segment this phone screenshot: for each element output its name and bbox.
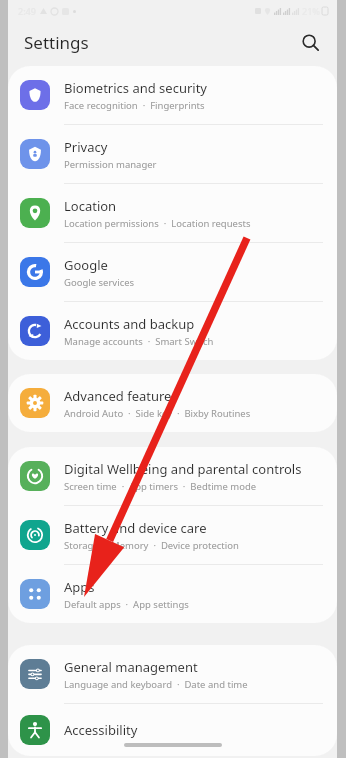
staticText: Storage · Memory · Device protection	[64, 539, 239, 552]
button[interactable]: Accessibility	[8, 704, 337, 756]
staticText: Advanced features	[64, 387, 178, 405]
button[interactable]: Privacy	[8, 125, 337, 183]
button[interactable]: Digital Wellbeing and parental controls	[8, 447, 337, 505]
staticText: Apps	[64, 578, 95, 596]
staticText: Default apps · App settings	[64, 598, 189, 611]
staticText: Face recognition · Fingerprints	[64, 99, 205, 112]
staticText: Language and keyboard · Date and time	[64, 678, 248, 691]
staticText: Google services	[64, 276, 135, 289]
staticText: Location	[64, 197, 117, 215]
staticText: Accessibility	[64, 721, 138, 739]
button[interactable]: Accounts and backup	[8, 302, 337, 360]
staticText: Privacy	[64, 138, 108, 156]
staticText: Google	[64, 256, 108, 274]
staticText: Battery and device care	[64, 519, 207, 537]
button[interactable]: Advanced features	[8, 374, 337, 432]
button[interactable]: General management	[8, 645, 337, 703]
staticText: General management	[64, 658, 198, 676]
button[interactable]: Battery and device care	[8, 506, 337, 564]
staticText: Android Auto · Side key · Bixby Routines	[64, 407, 251, 420]
button[interactable]: Biometrics and security	[8, 66, 337, 124]
staticText: Digital Wellbeing and parental controls	[64, 460, 302, 478]
staticText: Manage accounts · Smart Switch	[64, 335, 214, 348]
staticText: Accounts and backup	[64, 315, 195, 333]
staticText: Screen time · App timers · Bedtime mode	[64, 480, 257, 493]
staticText: Biometrics and security	[64, 79, 208, 97]
button[interactable]: Google	[8, 243, 337, 301]
staticText: Settings	[24, 31, 89, 54]
button[interactable]: Search	[293, 25, 327, 59]
button[interactable]: Apps	[8, 565, 337, 623]
staticText: Location permissions · Location requests	[64, 217, 251, 230]
staticText: 2:49	[18, 5, 36, 17]
staticText: Permission manager	[64, 158, 157, 171]
button[interactable]: Location	[8, 184, 337, 242]
